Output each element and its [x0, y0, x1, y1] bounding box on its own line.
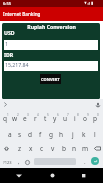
button[interactable]: s — [15, 127, 25, 139]
staticText: 9 — [87, 113, 89, 117]
button[interactable]: Backspace — [91, 141, 103, 155]
button[interactable]: a — [5, 127, 15, 139]
staticText: 4 — [37, 113, 39, 117]
button[interactable]: u — [60, 111, 70, 123]
staticText: 7 — [67, 113, 69, 117]
button[interactable]: q — [0, 111, 10, 123]
button[interactable]: Shift — [0, 141, 12, 155]
staticText: j — [72, 130, 74, 139]
button[interactable]: Enter — [91, 157, 99, 165]
button[interactable]: g — [45, 127, 56, 139]
staticText: Internet Banking — [3, 11, 41, 17]
button[interactable]: 1 — [4, 40, 98, 50]
staticText: 5 — [47, 113, 49, 117]
staticText: y — [53, 114, 57, 123]
staticText: 0 — [97, 113, 99, 117]
staticText: CONVERT — [41, 77, 60, 82]
staticText: z — [18, 144, 22, 153]
button[interactable]: CONVERT — [40, 74, 61, 84]
staticText: k — [82, 130, 86, 139]
staticText: x — [29, 144, 33, 153]
staticText: a — [8, 130, 12, 139]
button[interactable]: 15,217.84 — [4, 61, 98, 71]
staticText: ?123 — [3, 160, 12, 165]
button[interactable]: d — [25, 127, 35, 139]
staticText: Rupiah Conversion — [27, 23, 76, 30]
staticText: IDR — [4, 51, 14, 58]
button[interactable]: m — [80, 141, 91, 155]
button[interactable]: c — [36, 141, 47, 155]
button[interactable]: e — [20, 111, 30, 123]
button[interactable]: Back — [6, 168, 32, 183]
staticText: c — [40, 144, 44, 153]
button[interactable]: k — [78, 127, 89, 139]
button[interactable]: ?123 — [0, 155, 14, 169]
staticText: m — [82, 144, 89, 153]
button[interactable]: Emoji — [22, 155, 33, 169]
staticText: . — [84, 158, 86, 166]
staticText: 6 — [57, 113, 59, 117]
staticText: 2 — [17, 113, 19, 117]
button[interactable]: f — [35, 127, 45, 139]
button[interactable]: o — [80, 111, 90, 123]
staticText: s — [18, 130, 22, 139]
button[interactable]: p — [90, 111, 100, 123]
staticText: d — [28, 130, 32, 139]
staticText: v — [51, 144, 55, 153]
button[interactable]: l — [89, 127, 100, 139]
button[interactable]: Expand suggestions — [0, 99, 11, 110]
staticText: , — [18, 158, 20, 166]
staticText: USD — [4, 29, 15, 36]
button[interactable]: y — [50, 111, 60, 123]
staticText: r — [34, 114, 37, 123]
button[interactable]: Home — [39, 168, 65, 183]
staticText: w — [12, 114, 18, 123]
button[interactable]: , — [13, 155, 24, 169]
button[interactable]: r — [30, 111, 40, 123]
staticText: b — [62, 144, 66, 153]
button[interactable]: . — [80, 155, 90, 169]
button[interactable]: z — [14, 141, 25, 155]
staticText: p — [93, 114, 97, 123]
button[interactable]: Recents — [71, 168, 97, 183]
button[interactable]: b — [58, 141, 69, 155]
staticText: t — [44, 114, 47, 123]
staticText: q — [3, 114, 7, 123]
staticText: 15,217.84 — [5, 61, 29, 68]
staticText: 6:55 — [3, 1, 11, 6]
staticText: i — [74, 114, 76, 123]
button[interactable]: v — [47, 141, 58, 155]
button[interactable]: h — [56, 127, 67, 139]
staticText: n — [72, 144, 77, 153]
staticText: l — [94, 130, 96, 139]
staticText: o — [83, 114, 87, 123]
button[interactable]: n — [69, 141, 80, 155]
button[interactable]: Voice input — [92, 99, 103, 110]
staticText: u — [63, 114, 68, 123]
staticText: g — [49, 130, 53, 139]
button[interactable]: j — [67, 127, 78, 139]
button[interactable]: t — [40, 111, 50, 123]
button[interactable]: x — [25, 141, 36, 155]
staticText: f — [39, 130, 42, 139]
staticText: h — [59, 130, 64, 139]
staticText: 1 — [5, 40, 8, 47]
button[interactable]: w — [10, 111, 20, 123]
staticText: 3 — [27, 113, 29, 117]
staticText: e — [23, 114, 27, 123]
staticText: 1 — [7, 113, 9, 117]
button[interactable]: i — [70, 111, 80, 123]
staticText: 8 — [77, 113, 79, 117]
